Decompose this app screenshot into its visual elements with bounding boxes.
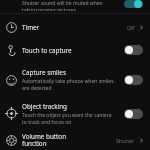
staticText: Timer — [22, 23, 40, 32]
staticText: Capture smiles — [22, 68, 66, 77]
staticText: Volume button function — [22, 132, 67, 148]
staticText: Shutter sound will be muted when — [22, 0, 103, 7]
staticText: Object tracking — [22, 102, 67, 111]
button[interactable]: On — [124, 0, 143, 8]
button[interactable]: Volume button function — [0, 130, 150, 150]
button[interactable]: Capture smiles — [0, 63, 150, 97]
button[interactable]: Off — [124, 75, 143, 85]
other: Timer — [138, 24, 145, 31]
button[interactable]: Off — [124, 109, 143, 119]
other: Volume button function — [138, 137, 145, 144]
staticText: Touch to capture — [22, 46, 72, 55]
button[interactable]: Shutter sound will be muted when — [0, 0, 150, 13]
button[interactable]: Touch to capture — [0, 37, 150, 63]
staticText: Off — [127, 24, 135, 31]
button[interactable]: Off — [124, 45, 143, 55]
staticText: Touch the object you want the camera to … — [22, 112, 112, 126]
staticText: Automatically take photos when smiles ar… — [22, 78, 114, 92]
staticText: taking moving pictures — [22, 7, 76, 11]
staticText: Shutter — [116, 137, 135, 144]
button[interactable]: Object tracking — [0, 97, 150, 130]
button[interactable]: Timer — [0, 17, 150, 37]
